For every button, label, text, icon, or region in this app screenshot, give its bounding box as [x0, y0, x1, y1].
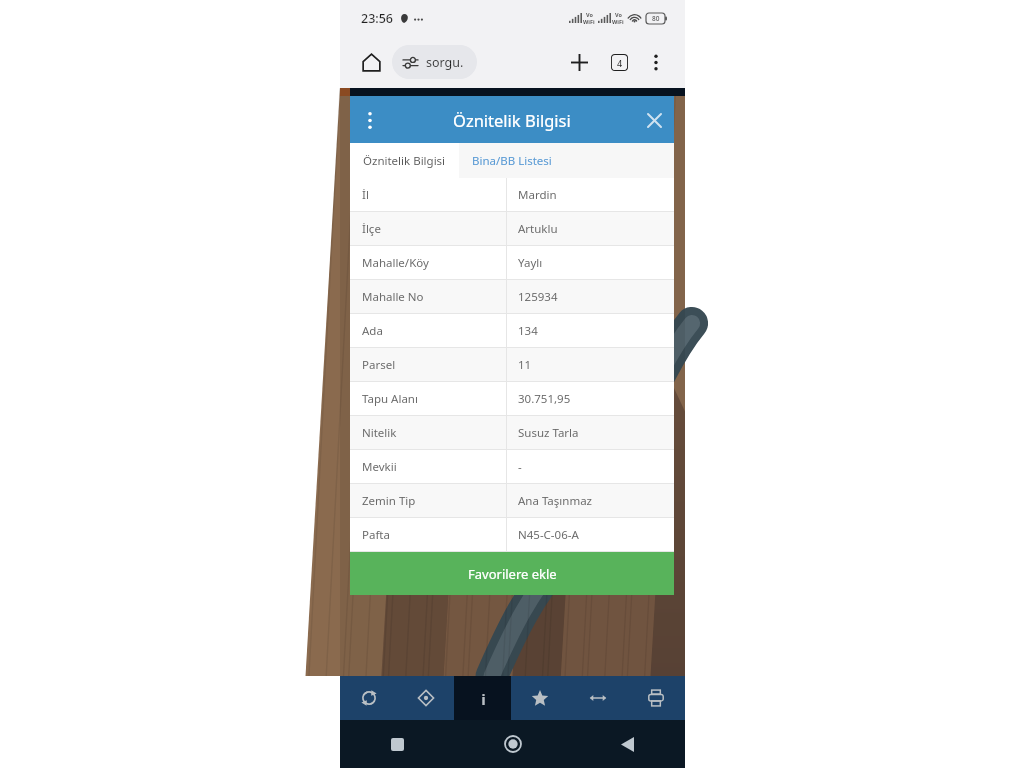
button[interactable]: Measure: [569, 676, 627, 720]
staticText: Tapu Alanı: [362, 391, 418, 407]
staticText: Öznitelik Bilgisi: [363, 153, 446, 169]
staticText: Bina/BB Listesi: [472, 153, 552, 169]
button[interactable]: Favorilere ekle: [350, 552, 674, 595]
button[interactable]: Close: [634, 100, 674, 140]
staticText: Nitelik: [362, 425, 397, 441]
staticText: İl: [362, 187, 369, 203]
button[interactable]: Nitelik: [350, 416, 674, 449]
staticText: Pafta: [362, 527, 390, 543]
staticText: Vo: [586, 11, 593, 18]
button[interactable]: More options: [639, 45, 673, 79]
button[interactable]: Ada: [350, 314, 674, 347]
staticText: İlçe: [362, 221, 381, 237]
staticText: Öznitelik Bilgisi: [453, 109, 571, 131]
staticText: 4: [617, 57, 623, 69]
staticText: N45-C-06-A: [518, 527, 579, 543]
staticText: Parsel: [362, 357, 396, 373]
button[interactable]: New tab: [562, 45, 596, 79]
staticText: Mardin: [518, 187, 557, 203]
staticText: i: [481, 689, 486, 707]
staticText: Zemin Tip: [362, 493, 416, 509]
button[interactable]: Parsel: [350, 348, 674, 381]
button[interactable]: Refresh: [340, 676, 397, 720]
staticText: 80: [652, 14, 660, 23]
button[interactable]: İl: [350, 178, 674, 211]
staticText: Yaylı: [518, 255, 543, 271]
button[interactable]: Locate: [397, 676, 454, 720]
staticText: 30.751,95: [518, 391, 571, 407]
staticText: Mahalle No: [362, 289, 424, 305]
button[interactable]: Mahalle/Köy: [350, 246, 674, 279]
button[interactable]: Bina/BB Listesi: [459, 143, 565, 178]
button[interactable]: Mevkii: [350, 450, 674, 483]
button[interactable]: Menu: [350, 100, 390, 140]
button[interactable]: Recents: [340, 720, 455, 768]
button[interactable]: Print: [627, 676, 685, 720]
staticText: 134: [518, 323, 538, 339]
staticText: Favorilere ekle: [468, 565, 557, 583]
button[interactable]: Mahalle No: [350, 280, 674, 313]
button[interactable]: Zemin Tip: [350, 484, 674, 517]
staticText: 11: [518, 357, 532, 373]
button[interactable]: İlçe: [350, 212, 674, 245]
button[interactable]: Info: [454, 676, 511, 720]
staticText: Mahalle/Köy: [362, 255, 429, 271]
button[interactable]: Öznitelik Bilgisi: [350, 143, 459, 178]
staticText: Mevkii: [362, 459, 397, 475]
staticText: Susuz Tarla: [518, 425, 579, 441]
staticText: Vo: [615, 11, 622, 18]
button[interactable]: Back: [570, 720, 685, 768]
button[interactable]: Home: [354, 45, 388, 79]
button[interactable]: sorgu.tkgm.gov.tr: [392, 45, 477, 79]
button[interactable]: Pafta: [350, 518, 674, 551]
staticText: Artuklu: [518, 221, 558, 237]
staticText: Ana Taşınmaz: [518, 493, 593, 509]
staticText: 125934: [518, 289, 558, 305]
staticText: sorgu.tkgm.gov.tr: [426, 54, 466, 71]
button[interactable]: Favorites: [511, 676, 569, 720]
staticText: WiFi: [612, 18, 624, 25]
button[interactable]: Tabs: 4: [602, 45, 636, 79]
button[interactable]: Tapu Alanı: [350, 382, 674, 415]
staticText: -: [518, 459, 522, 475]
staticText: WiFi: [583, 18, 595, 25]
staticText: 23:56: [361, 10, 394, 27]
button[interactable]: Home: [455, 720, 570, 768]
staticText: Ada: [362, 323, 383, 339]
